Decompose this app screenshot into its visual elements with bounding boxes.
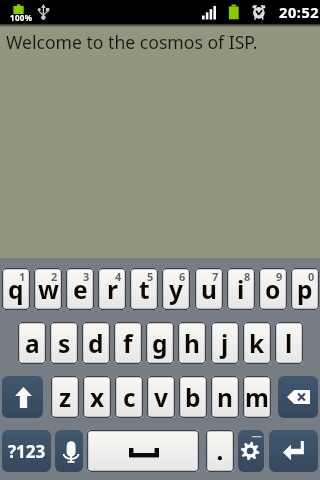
button[interactable]: c — [115, 376, 143, 418]
staticText: 6 — [179, 269, 186, 284]
button[interactable]: q — [2, 268, 30, 310]
button[interactable]: j — [211, 322, 239, 364]
button[interactable]: Backspace — [278, 376, 318, 418]
staticText: t — [139, 273, 150, 306]
staticText: u — [201, 273, 217, 306]
button[interactable]: l — [275, 322, 303, 364]
button[interactable]: u — [195, 268, 223, 310]
staticText: v — [154, 381, 168, 414]
button[interactable]: Settings — [238, 430, 264, 472]
staticText: h — [184, 327, 200, 360]
staticText: b — [185, 381, 201, 414]
staticText: 5 — [147, 269, 154, 284]
button[interactable]: k — [243, 322, 271, 364]
staticText: o — [265, 273, 281, 306]
button[interactable]: y — [162, 268, 190, 310]
staticText: 4 — [115, 269, 122, 284]
button[interactable]: Shift — [2, 376, 43, 418]
staticText: c — [123, 381, 136, 414]
staticText: n — [217, 381, 233, 414]
staticText: e — [73, 273, 88, 306]
staticText: l — [285, 327, 293, 360]
staticText: y — [169, 273, 183, 306]
button[interactable]: m — [243, 376, 271, 418]
button[interactable]: Voice input — [55, 430, 83, 472]
button[interactable]: w — [34, 268, 62, 310]
staticText: 9 — [276, 269, 283, 284]
button[interactable]: g — [146, 322, 174, 364]
staticText: g — [152, 327, 168, 360]
button[interactable]: f — [114, 322, 142, 364]
staticText: 3 — [83, 269, 90, 284]
button[interactable]: r — [98, 268, 126, 310]
staticText: 7 — [212, 269, 219, 284]
button[interactable]: s — [50, 322, 78, 364]
button[interactable]: h — [178, 322, 206, 364]
staticText: 8 — [244, 269, 251, 284]
button[interactable]: i — [227, 268, 255, 310]
staticText: r — [107, 273, 118, 306]
button[interactable]: z — [51, 376, 79, 418]
staticText: i — [237, 273, 245, 306]
staticText: 20:52 — [279, 2, 320, 22]
button[interactable]: Enter — [269, 430, 318, 472]
staticText: d — [88, 327, 104, 360]
staticText: a — [25, 327, 40, 360]
button[interactable]: ?123 — [2, 430, 51, 472]
button[interactable]: a — [18, 322, 46, 364]
button[interactable]: n — [211, 376, 239, 418]
button[interactable] — [87, 430, 199, 472]
staticText: 1 — [19, 269, 26, 284]
button[interactable]: t — [130, 268, 158, 310]
staticText: 100% — [10, 12, 33, 23]
button[interactable]: v — [147, 376, 175, 418]
button[interactable]: e — [66, 268, 94, 310]
staticText: p — [297, 273, 313, 306]
button[interactable]: x — [83, 376, 111, 418]
staticText: 0 — [308, 269, 315, 284]
staticText: x — [90, 381, 105, 414]
staticText: q — [8, 273, 24, 306]
staticText: w — [38, 273, 59, 306]
staticText: 2 — [51, 269, 58, 284]
staticText: k — [249, 327, 265, 360]
staticText: ?123 — [8, 440, 46, 463]
staticText: s — [58, 327, 71, 360]
button[interactable]: o — [259, 268, 287, 310]
button[interactable]: p — [291, 268, 319, 310]
staticText: Welcome to the cosmos of ISP. — [6, 30, 258, 54]
button[interactable]: d — [82, 322, 110, 364]
staticText: j — [221, 327, 229, 360]
staticText: z — [59, 381, 72, 414]
button[interactable]: b — [179, 376, 207, 418]
button[interactable] — [206, 430, 234, 472]
staticText: m — [245, 381, 269, 414]
staticText: f — [123, 327, 133, 360]
